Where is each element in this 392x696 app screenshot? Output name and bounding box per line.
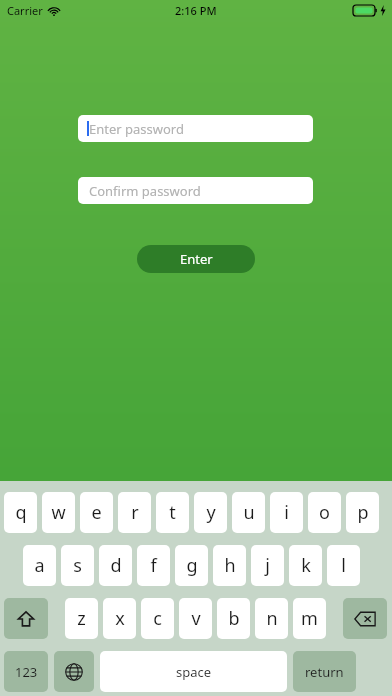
staticText: i: [284, 500, 289, 525]
button[interactable]: s: [61, 545, 94, 586]
button[interactable]: k: [289, 545, 322, 586]
button[interactable]: f: [137, 545, 170, 586]
button[interactable]: h: [213, 545, 246, 586]
staticText: l: [341, 553, 346, 578]
button[interactable]: m: [293, 598, 326, 639]
button[interactable]: g: [175, 545, 208, 586]
staticText: e: [91, 500, 102, 525]
button[interactable]: Shift: [4, 598, 48, 639]
button[interactable]: return: [293, 651, 356, 692]
button[interactable]: t: [156, 492, 189, 533]
button[interactable]: e: [80, 492, 113, 533]
staticText: Enter: [180, 250, 213, 268]
staticText: z: [77, 606, 86, 631]
button[interactable]: u: [232, 492, 265, 533]
button[interactable]: y: [194, 492, 227, 533]
staticText: t: [169, 500, 176, 525]
staticText: 123: [15, 663, 38, 681]
staticText: Carrier: [7, 3, 43, 18]
button[interactable]: Enter password: [78, 115, 313, 142]
staticText: d: [110, 553, 122, 578]
button[interactable]: a: [23, 545, 56, 586]
button[interactable]: Backspace: [343, 598, 387, 639]
staticText: g: [186, 553, 198, 578]
button[interactable]: x: [103, 598, 136, 639]
button[interactable]: c: [141, 598, 174, 639]
staticText: c: [153, 606, 162, 631]
staticText: f: [150, 553, 157, 578]
button[interactable]: Confirm password: [78, 177, 313, 204]
button[interactable]: v: [179, 598, 212, 639]
staticText: j: [265, 553, 270, 578]
staticText: s: [73, 553, 82, 578]
staticText: space: [176, 663, 212, 681]
staticText: u: [243, 500, 255, 525]
button[interactable]: l: [327, 545, 360, 586]
staticText: Enter password: [89, 120, 184, 138]
staticText: b: [228, 606, 240, 631]
button[interactable]: q: [4, 492, 37, 533]
staticText: q: [15, 500, 27, 525]
staticText: a: [34, 553, 45, 578]
staticText: return: [305, 663, 344, 681]
button[interactable]: i: [270, 492, 303, 533]
staticText: p: [357, 500, 369, 525]
button[interactable]: 123: [4, 651, 48, 692]
staticText: o: [319, 500, 330, 525]
staticText: v: [191, 606, 201, 631]
staticText: Confirm password: [89, 182, 201, 200]
button[interactable]: p: [346, 492, 379, 533]
staticText: w: [51, 500, 66, 525]
button[interactable]: Switch keyboard: [54, 651, 94, 692]
button[interactable]: d: [99, 545, 132, 586]
staticText: r: [131, 500, 139, 525]
staticText: n: [266, 606, 278, 631]
staticText: 2:16 PM: [175, 3, 217, 18]
button[interactable]: n: [255, 598, 288, 639]
button[interactable]: o: [308, 492, 341, 533]
staticText: x: [115, 606, 125, 631]
staticText: y: [206, 500, 216, 525]
staticText: h: [224, 553, 236, 578]
staticText: k: [301, 553, 311, 578]
button[interactable]: space: [100, 651, 287, 692]
button[interactable]: w: [42, 492, 75, 533]
button[interactable]: r: [118, 492, 151, 533]
button[interactable]: b: [217, 598, 250, 639]
staticText: m: [301, 606, 318, 631]
button[interactable]: z: [65, 598, 98, 639]
button[interactable]: j: [251, 545, 284, 586]
button[interactable]: Enter: [137, 245, 255, 273]
